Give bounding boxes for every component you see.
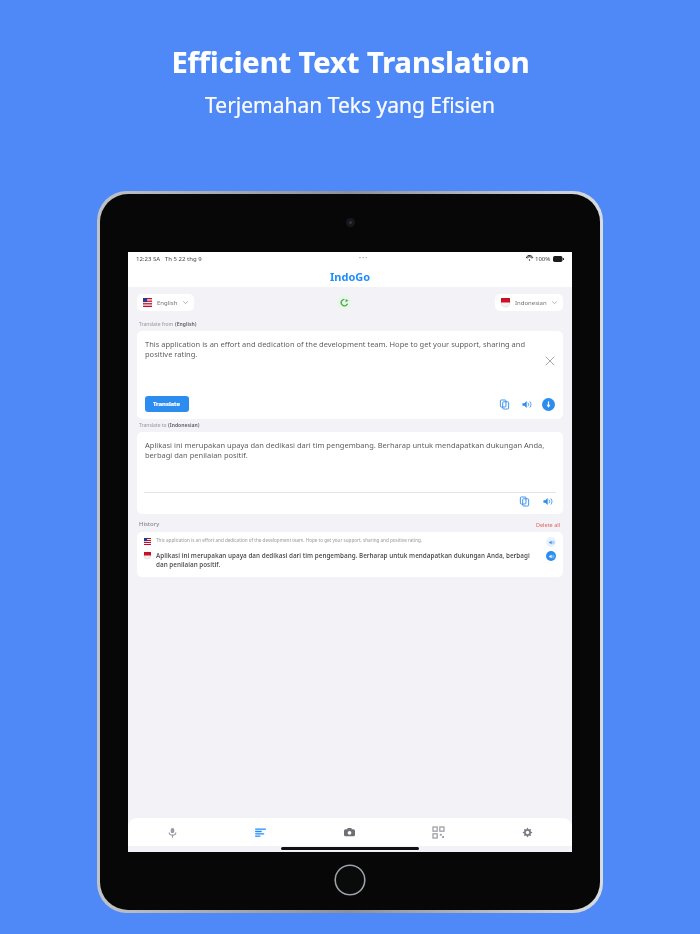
- button[interactable]: Speak translation: [541, 495, 554, 508]
- staticText: Terjemahan Teks yang Efisien: [205, 91, 495, 120]
- staticText: English: [157, 299, 178, 307]
- button[interactable]: Home: [334, 864, 366, 896]
- button[interactable]: Translate: [145, 396, 189, 412]
- button[interactable]: Text: [216, 818, 305, 846]
- staticText: 100%: [535, 255, 551, 263]
- staticText: Translate to: [139, 422, 168, 429]
- button[interactable]: English: [137, 294, 194, 311]
- button[interactable]: Play source: [546, 537, 556, 547]
- staticText: This application is an effort and dedica…: [156, 537, 542, 543]
- staticText: • • •: [359, 255, 368, 262]
- button[interactable]: Copy: [498, 398, 511, 411]
- button[interactable]: Delete all: [536, 521, 561, 528]
- staticText: Translate: [153, 400, 181, 408]
- staticText: Delete all: [536, 521, 561, 528]
- button[interactable]: Download: [542, 398, 555, 411]
- button[interactable]: Clear text: [544, 355, 556, 367]
- button[interactable]: Copy translation: [518, 495, 531, 508]
- button[interactable]: Voice: [128, 818, 216, 846]
- button[interactable]: This application is an effort and dedica…: [137, 532, 563, 577]
- button[interactable]: Camera: [305, 818, 394, 846]
- button[interactable]: QR code: [394, 818, 483, 846]
- staticText: Efficient Text Translation: [171, 42, 530, 81]
- staticText: (English): [175, 321, 197, 328]
- button[interactable]: Play translation: [546, 551, 556, 561]
- staticText: 12:23 SA Th 5 22 thg 9: [136, 255, 202, 263]
- staticText: Aplikasi ini merupakan upaya dan dedikas…: [145, 440, 553, 460]
- staticText: (Indonesian): [168, 422, 200, 429]
- button[interactable]: Settings: [483, 818, 572, 846]
- staticText: Aplikasi ini merupakan upaya dan dedikas…: [156, 551, 542, 569]
- staticText: Indonesian: [515, 299, 547, 307]
- staticText: This application is an effort and dedica…: [145, 339, 541, 359]
- button[interactable]: Speak: [520, 398, 533, 411]
- button[interactable]: Swap languages: [337, 295, 352, 310]
- staticText: History: [139, 520, 160, 528]
- staticText: Translate from: [139, 321, 175, 328]
- staticText: IndoGo: [330, 269, 371, 284]
- button[interactable]: Indonesian: [495, 294, 563, 311]
